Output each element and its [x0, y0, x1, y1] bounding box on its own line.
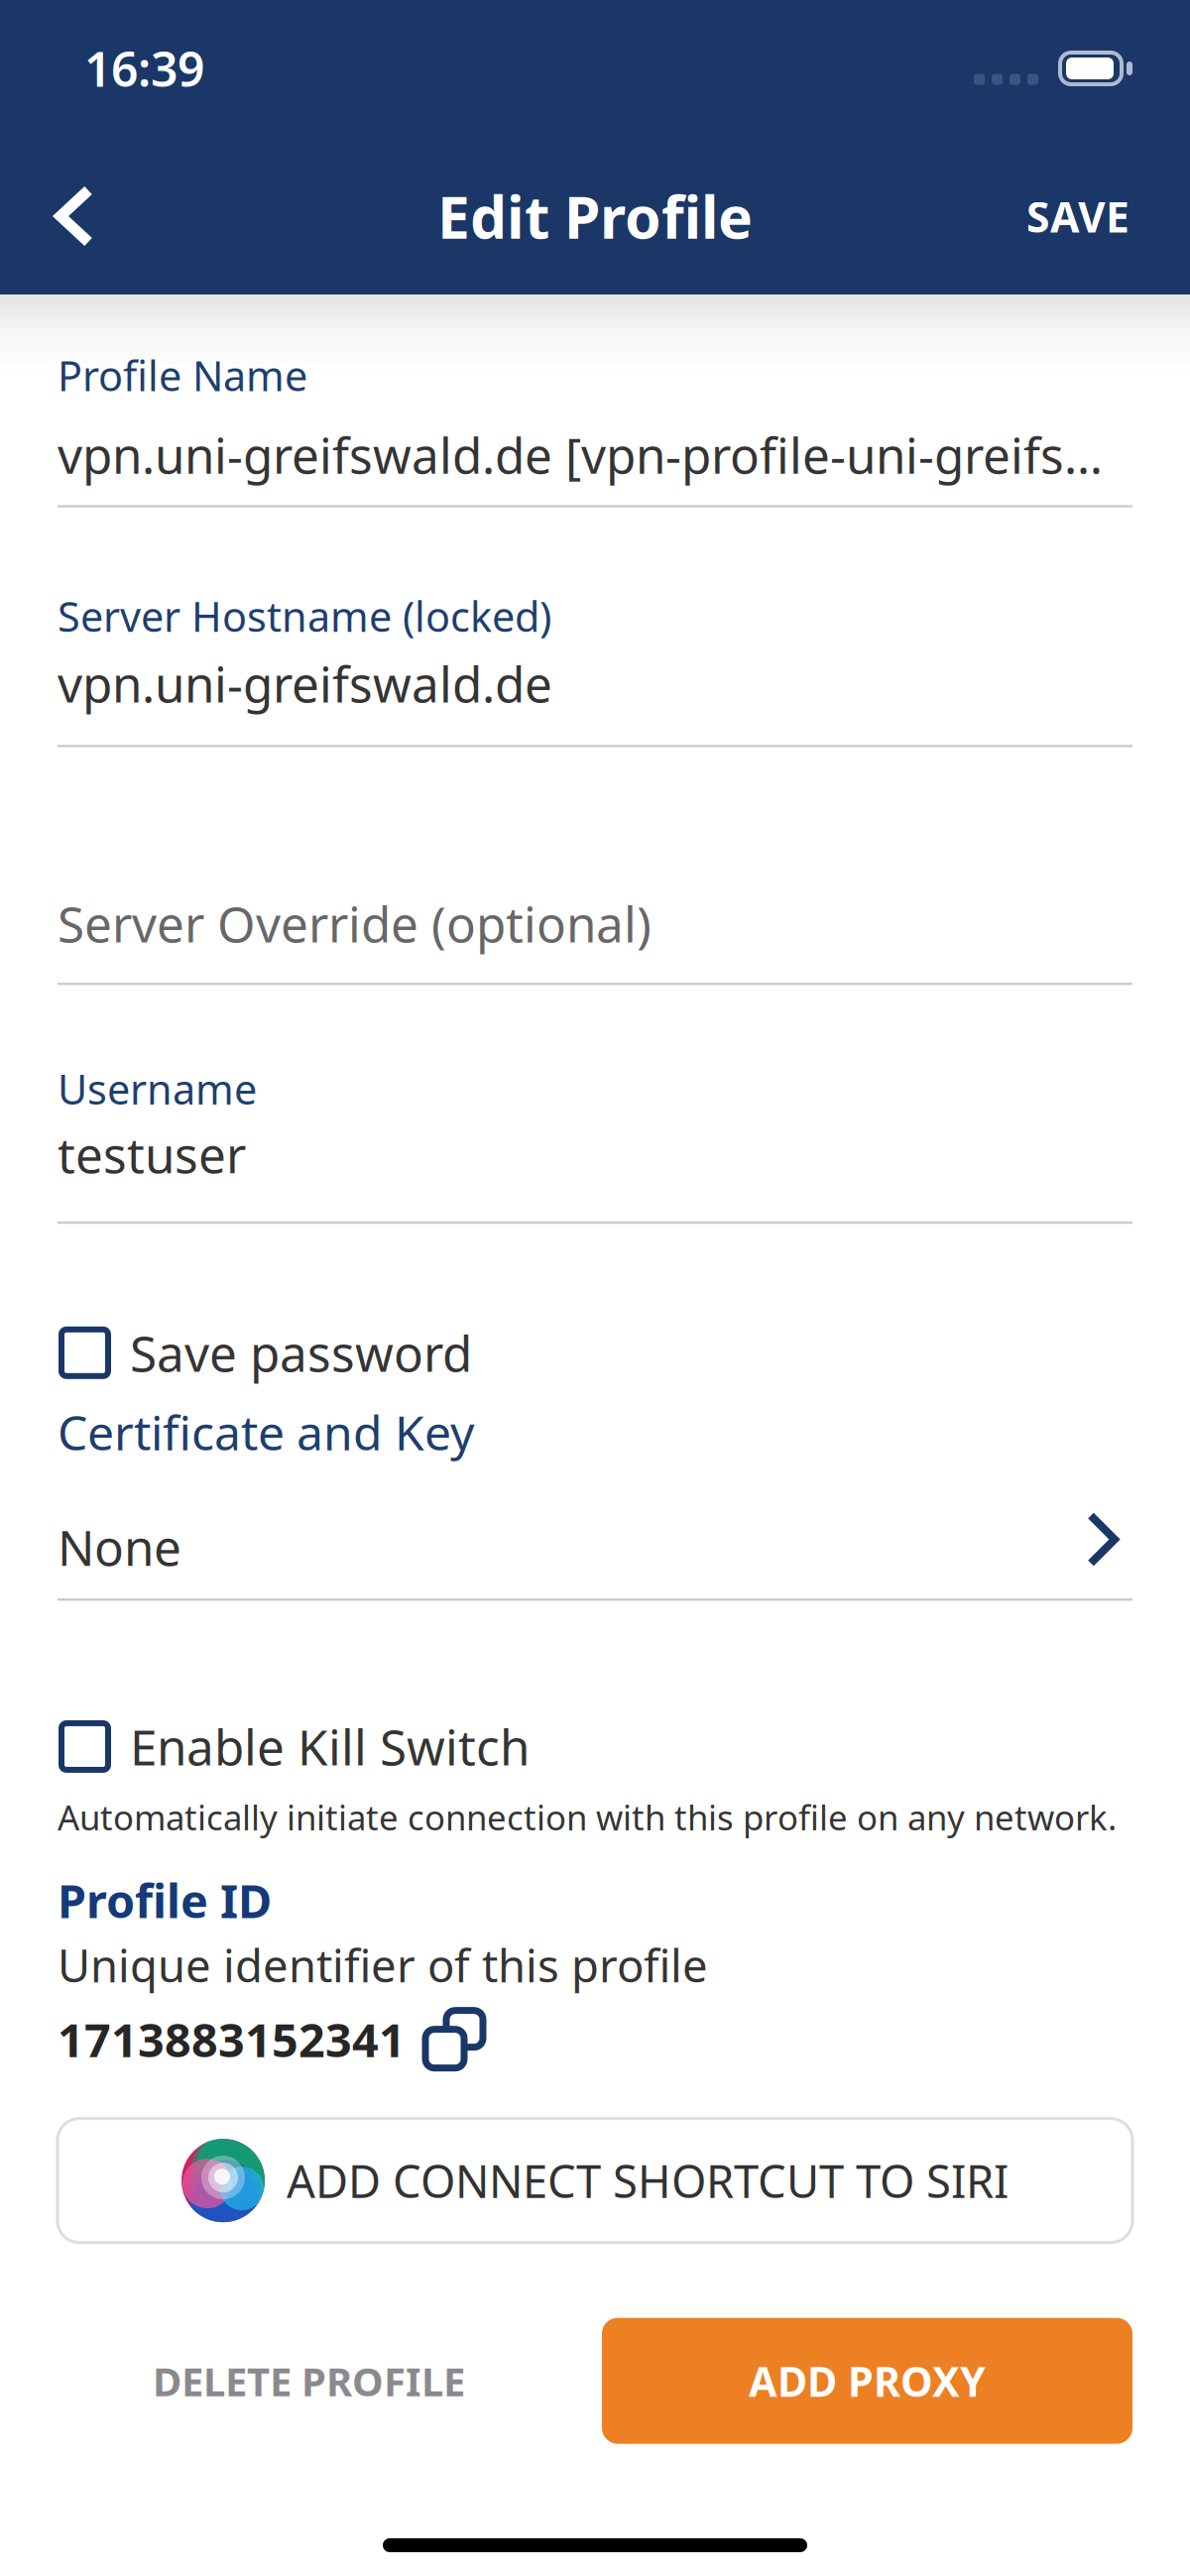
staticText: Enable Kill Switch — [130, 1714, 530, 1779]
staticText: Unique identifier of this profile — [58, 1935, 708, 1995]
staticText: Profile Name — [58, 348, 307, 402]
button[interactable]: SAVE — [997, 167, 1159, 266]
button[interactable]: Back — [31, 167, 118, 266]
staticText: ADD PROXY — [749, 2354, 986, 2408]
staticText: ADD CONNECT SHORTCUT TO SIRI — [287, 2151, 1009, 2210]
staticText: Automatically initiate connection with t… — [58, 1794, 1117, 1840]
button[interactable]: ADD PROXY — [602, 2318, 1132, 2444]
staticText: vpn.uni-greifswald.de [vpn-profile-uni-g… — [58, 422, 1103, 487]
staticText: Username — [58, 1061, 257, 1116]
staticText: Profile ID — [58, 1870, 272, 1931]
staticText: Save password — [130, 1320, 472, 1385]
button[interactable]: ADD CONNECT SHORTCUT TO SIRI — [58, 2119, 1132, 2243]
staticText: DELETE PROFILE — [153, 2354, 465, 2407]
staticText: testuser — [58, 1122, 246, 1187]
button[interactable]: DELETE PROFILE — [58, 2318, 509, 2444]
staticText: SAVE — [1026, 188, 1130, 244]
staticText: 16:39 — [84, 37, 204, 100]
staticText: 1713883152341 — [58, 2009, 406, 2070]
button[interactable]: Copy profile ID — [425, 2011, 483, 2068]
button[interactable]: Enable Kill Switch — [58, 1721, 1132, 1772]
button[interactable]: None — [58, 1518, 1132, 1601]
staticText: Certificate and Key — [58, 1400, 474, 1464]
button[interactable]: Save password — [58, 1327, 1132, 1379]
staticText: Server Hostname (locked) — [58, 589, 551, 643]
staticText: Edit Profile — [437, 177, 753, 255]
staticText: Server Override (optional) — [58, 891, 652, 956]
staticText: None — [58, 1514, 181, 1579]
staticText: vpn.uni-greifswald.de — [58, 651, 552, 716]
